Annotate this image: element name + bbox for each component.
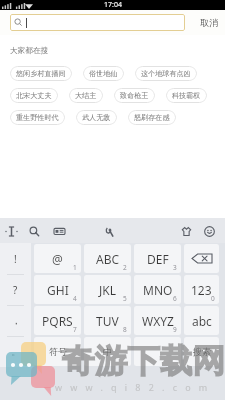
button[interactable]: 北宋大丈夫: [10, 88, 58, 103]
button[interactable]: Handwriting: [101, 223, 117, 239]
button[interactable]: Search: [184, 337, 219, 366]
button[interactable]: Backspace: [184, 244, 219, 273]
staticText: 俗世地仙: [89, 69, 118, 78]
staticText: TUV: [96, 313, 119, 329]
staticText: 9: [173, 325, 177, 334]
button[interactable]: MNO: [134, 275, 181, 304]
staticText: 4: [73, 294, 77, 303]
staticText: 大结主: [75, 91, 97, 100]
staticText: 奇游下载网: [62, 341, 225, 382]
staticText: www.qi82.com: [55, 381, 216, 393]
staticText: 武人无敌: [82, 113, 111, 122]
button[interactable]: JKL: [84, 275, 131, 304]
button[interactable]: 致命枪王: [114, 88, 155, 103]
staticText: 7: [73, 325, 77, 334]
button[interactable]: Symbols: [34, 337, 81, 366]
button[interactable]: Space: [134, 337, 181, 366]
staticText: 搜索: [193, 346, 211, 357]
button[interactable]: abc: [184, 306, 219, 335]
staticText: DEF: [147, 251, 169, 267]
button[interactable]: DEF: [134, 244, 181, 273]
button[interactable]: ?: [0, 274, 31, 305]
button[interactable]: 重生野性时代: [10, 110, 65, 125]
staticText: JKL: [99, 282, 116, 298]
staticText: 8: [123, 325, 127, 334]
staticText: 符号: [49, 346, 67, 357]
button[interactable]: TUV: [84, 306, 131, 335]
button[interactable]: 这个地球有点凶: [135, 66, 197, 81]
staticText: 致命枪王: [120, 91, 149, 100]
staticText: 大家都在搜: [10, 46, 48, 56]
staticText: 3: [173, 263, 177, 272]
staticText: MNO: [143, 282, 173, 298]
button[interactable]: Emoji: [201, 223, 217, 239]
staticText: 2: [123, 263, 127, 272]
button[interactable]: 武人无敌: [76, 110, 117, 125]
button[interactable]: PQRS: [34, 306, 81, 335]
button[interactable]: @: [34, 244, 81, 273]
staticText: 17:04: [104, 0, 122, 10]
staticText: 悠闲乡村直播间: [16, 69, 66, 78]
staticText: 科技霸权: [172, 91, 201, 100]
staticText: GHI: [47, 282, 69, 298]
button[interactable]: ，: [0, 305, 31, 336]
staticText: ?: [13, 283, 18, 297]
staticText: !: [14, 252, 17, 266]
button[interactable]: 123: [184, 275, 219, 304]
staticText: 5: [123, 294, 127, 303]
button[interactable]: Chinese input: [84, 337, 131, 366]
button[interactable]: 大结主: [69, 88, 103, 103]
staticText: 0: [211, 294, 215, 303]
button[interactable]: 科技霸权: [166, 88, 207, 103]
staticText: 123: [191, 282, 212, 298]
staticText: 。: [11, 345, 21, 358]
button[interactable]: GHI: [34, 275, 81, 304]
button[interactable]: 俗世地仙: [83, 66, 124, 81]
staticText: 重生野性时代: [16, 113, 59, 122]
button[interactable]: Skin: [178, 223, 194, 239]
button[interactable]: 怒刷存在感: [128, 110, 176, 125]
staticText: PQRS: [42, 313, 73, 329]
staticText: 中: [103, 346, 112, 357]
staticText: 1: [73, 263, 77, 272]
button[interactable]: [10, 14, 185, 31]
button[interactable]: 。: [0, 336, 31, 367]
staticText: ，: [11, 314, 21, 327]
button[interactable]: WXYZ: [134, 306, 181, 335]
button[interactable]: Search: [26, 223, 42, 239]
staticText: 6: [173, 294, 177, 303]
staticText: 北宋大丈夫: [16, 91, 52, 100]
staticText: WXYZ: [142, 313, 174, 329]
staticText: 这个地球有点凶: [141, 69, 191, 78]
staticText: ABC: [96, 251, 120, 267]
button[interactable]: 悠闲乡村直播间: [10, 66, 72, 81]
button[interactable]: !: [0, 243, 31, 274]
staticText: abc: [192, 313, 212, 329]
button[interactable]: 取消: [193, 14, 225, 31]
staticText: 怒刷存在感: [134, 113, 170, 122]
button[interactable]: ABC: [84, 244, 131, 273]
button[interactable]: Clipboard: [51, 223, 67, 239]
staticText: 取消: [200, 17, 218, 28]
button[interactable]: Text cursor: [3, 223, 19, 239]
staticText: @: [52, 251, 63, 267]
